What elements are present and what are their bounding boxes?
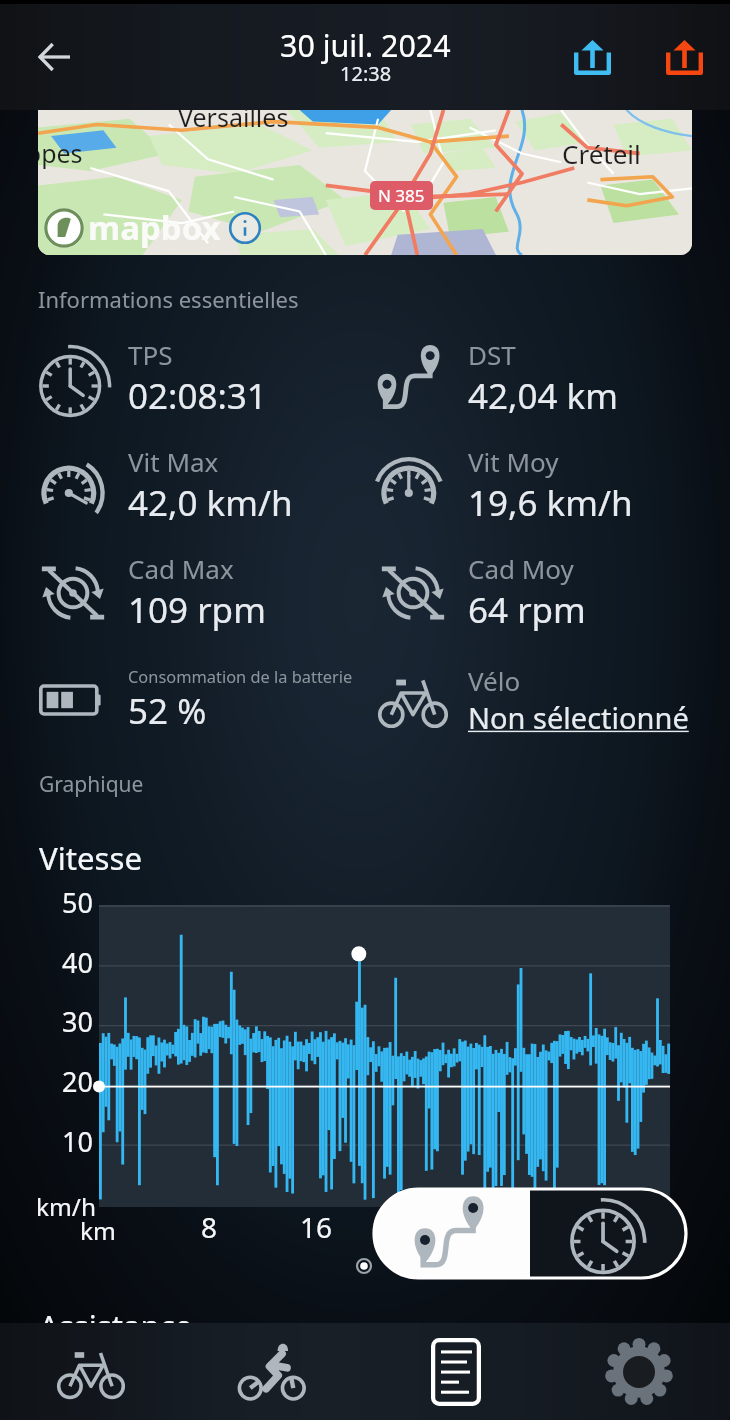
staticText: km/h <box>36 1190 96 1223</box>
staticText: 20 <box>62 1063 93 1100</box>
button[interactable]: Vit Moy <box>378 432 730 539</box>
button[interactable]: Rides <box>182 1323 364 1420</box>
staticText: 02:08:31 <box>128 372 267 420</box>
staticText: 19,6 km/h <box>468 479 633 527</box>
staticText: Non sélectionné <box>468 698 689 737</box>
button[interactable]: Vélo <box>378 646 730 753</box>
staticText: DST <box>468 337 516 372</box>
staticText: 40 <box>62 944 93 981</box>
button[interactable]: Export <box>644 17 724 97</box>
staticText: Vit Max <box>128 444 219 479</box>
button[interactable]: Bikes <box>0 1323 182 1420</box>
staticText: Graphique <box>39 770 144 799</box>
staticText: 42,0 km/h <box>128 479 293 527</box>
button[interactable]: Cad Max <box>38 539 365 646</box>
staticText: 30 juil. 2024 <box>280 25 451 66</box>
staticText: 8 <box>201 1208 218 1246</box>
staticText: opes <box>38 136 83 170</box>
staticText: Cad Moy <box>468 551 574 586</box>
button[interactable]: Settings <box>547 1323 730 1420</box>
staticText: 109 rpm <box>128 586 266 634</box>
staticText: 12:38 <box>340 60 392 87</box>
button[interactable]: Consommation de la batterie <box>38 646 365 753</box>
staticText: Vitesse <box>39 837 143 879</box>
button[interactable]: Back <box>6 9 102 105</box>
staticText: Vit Moy <box>468 444 559 479</box>
staticText: km <box>80 1214 116 1247</box>
button[interactable]: Vit Max <box>38 432 365 539</box>
staticText: 52 % <box>128 687 207 735</box>
button[interactable]: DST <box>378 325 730 432</box>
button[interactable]: Journal <box>364 1323 547 1420</box>
staticText: Vélo <box>468 663 521 698</box>
button[interactable]: Route map <box>38 110 692 255</box>
staticText: Créteil <box>562 136 641 171</box>
button[interactable]: Time axis <box>530 1189 686 1278</box>
staticText: 16 <box>300 1208 333 1246</box>
staticText: mapbox <box>88 205 221 250</box>
button[interactable]: Distance axis <box>374 1189 530 1278</box>
staticText: Informations essentielles <box>38 284 299 314</box>
button[interactable]: Share <box>552 17 632 97</box>
staticText: 42,04 km <box>468 372 618 420</box>
staticText: TPS <box>128 337 173 372</box>
staticText: Cad Max <box>128 551 234 586</box>
staticText: Assistance <box>39 1305 193 1347</box>
staticText: N 385 <box>378 184 425 207</box>
button[interactable]: TPS <box>38 325 365 432</box>
staticText: 30 <box>62 1003 93 1040</box>
button[interactable]: Cad Moy <box>378 539 730 646</box>
staticText: 50 <box>62 884 93 921</box>
staticText: Consommation de la batterie <box>128 665 353 687</box>
staticText: 64 rpm <box>468 586 586 634</box>
staticText: 10 <box>62 1123 93 1160</box>
staticText: Versailles <box>178 110 289 134</box>
